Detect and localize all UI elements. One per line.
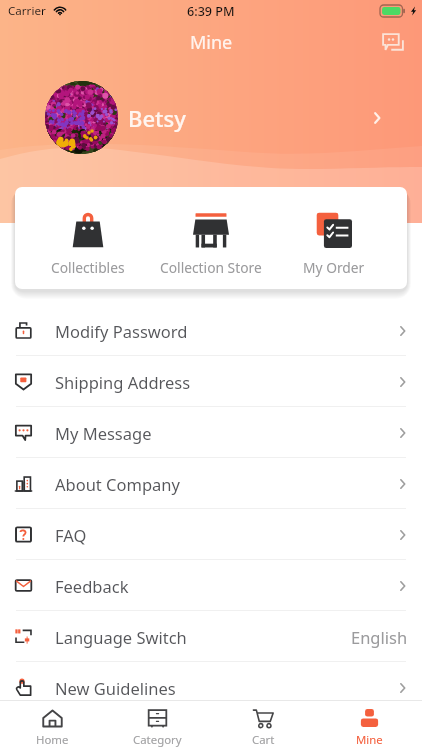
button[interactable]: Category	[105, 701, 210, 750]
button[interactable]: Betsy	[0, 81, 422, 154]
button[interactable]: Home	[0, 701, 105, 750]
button[interactable]: New Guidelines	[0, 662, 422, 713]
staticText: 6:39 PM	[187, 3, 235, 20]
staticText: Betsy	[128, 103, 186, 133]
button[interactable]: About Company	[0, 458, 422, 509]
staticText: Mine	[190, 30, 233, 55]
staticText: About Company	[55, 473, 180, 495]
button[interactable]: Cart	[210, 701, 316, 750]
staticText: Collection Store	[160, 258, 262, 277]
staticText: Feedback	[55, 575, 129, 597]
button[interactable]: Feedback	[0, 560, 422, 611]
button[interactable]: Collectibles	[27, 187, 149, 289]
button[interactable]: Shipping Address	[0, 356, 422, 407]
staticText: Home	[36, 732, 69, 748]
staticText: English	[351, 626, 408, 648]
staticText: My Order	[303, 258, 365, 277]
staticText: Cart	[252, 732, 275, 748]
staticText: My Message	[55, 422, 152, 444]
staticText: Mine	[356, 732, 383, 748]
staticText: New Guidelines	[55, 677, 176, 699]
button[interactable]: Messages	[373, 27, 413, 57]
button[interactable]: My Order	[272, 187, 395, 289]
button[interactable]: Mine	[316, 701, 422, 750]
button[interactable]: Modify Password	[0, 305, 422, 356]
button[interactable]: Collection Store	[149, 187, 272, 289]
staticText: Language Switch	[55, 626, 187, 648]
button[interactable]: Language Switch	[0, 611, 422, 662]
staticText: Modify Password	[55, 320, 188, 342]
button[interactable]: FAQ	[0, 509, 422, 560]
staticText: Category	[133, 732, 182, 748]
staticText: FAQ	[55, 524, 87, 546]
button[interactable]: My Message	[0, 407, 422, 458]
staticText: Shipping Address	[55, 371, 191, 393]
staticText: Collectibles	[51, 258, 125, 277]
staticText: Carrier	[8, 3, 46, 19]
